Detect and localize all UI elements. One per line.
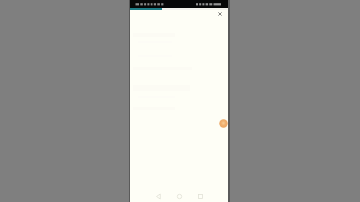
button[interactable] [152,191,164,201]
button[interactable] [194,191,206,201]
button[interactable] [214,8,226,20]
button[interactable] [219,119,228,128]
button[interactable] [173,191,185,201]
